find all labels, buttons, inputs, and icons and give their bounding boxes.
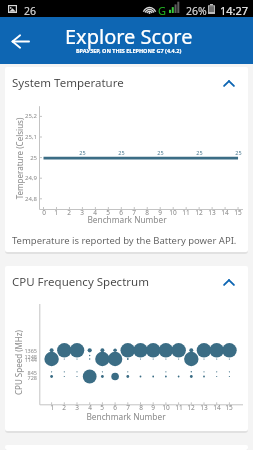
staticText: 26%	[186, 4, 207, 18]
staticText: 1	[54, 208, 58, 217]
staticText: Benchmark Number	[86, 411, 166, 422]
staticText: 12	[187, 403, 195, 412]
staticText: 24,9	[25, 174, 37, 182]
staticText: 13	[200, 403, 208, 412]
staticText: 15	[225, 403, 233, 412]
staticText: 1248	[24, 353, 37, 360]
button[interactable]: Back	[2, 23, 38, 59]
other: Collapse	[217, 270, 241, 294]
staticText: 11	[175, 403, 183, 412]
staticText: 4	[88, 403, 92, 412]
staticText: 25	[118, 149, 125, 156]
staticText: 24,8	[25, 195, 37, 203]
staticText: 845	[27, 369, 37, 376]
staticText: Temperature (Celsius)	[13, 117, 24, 199]
staticText: 10	[169, 208, 177, 217]
staticText: 11	[182, 208, 190, 217]
staticText: 2	[62, 403, 66, 412]
staticText: Explore Score	[65, 23, 193, 50]
button[interactable]: CPU Frequency Spectrum	[5, 266, 248, 298]
staticText: 10	[162, 403, 170, 412]
staticText: G	[158, 3, 167, 18]
staticText: 1365	[24, 347, 37, 354]
staticText: 2	[67, 208, 71, 217]
button[interactable]: System Temperature	[5, 67, 248, 99]
staticText: 8	[139, 403, 143, 412]
staticText: 26	[24, 4, 37, 18]
staticText: CPU Frequency Spectrum	[12, 274, 149, 290]
staticText: 7	[126, 403, 130, 412]
staticText: 6	[113, 403, 117, 412]
staticText: 15	[234, 208, 242, 217]
staticText: 5	[106, 208, 110, 217]
staticText: 1144	[24, 356, 37, 363]
staticText: 3	[80, 208, 84, 217]
staticText: 14:27	[220, 3, 249, 18]
staticText: System Temperature	[12, 75, 124, 91]
staticText: 25	[30, 154, 37, 162]
staticText: CPU Speed (MHz)	[13, 330, 24, 395]
other: Collapse	[217, 71, 241, 95]
staticText: 14	[213, 403, 221, 412]
staticText: 7	[132, 208, 136, 217]
staticText: Benchmark Number	[87, 214, 167, 225]
staticText: 0	[42, 208, 46, 217]
staticText: 13	[208, 208, 216, 217]
staticText: 1	[50, 403, 54, 412]
staticText: 25	[157, 149, 164, 156]
staticText: 728	[27, 374, 37, 381]
staticText: 12	[195, 208, 203, 217]
staticText: 25	[196, 149, 203, 156]
staticText: 4	[93, 208, 97, 217]
staticText: 6	[119, 208, 123, 217]
staticText: 9	[158, 208, 162, 217]
staticText: 25,2	[25, 112, 37, 120]
staticText: 5	[100, 403, 104, 412]
staticText: 25	[235, 149, 242, 156]
staticText: 14	[221, 208, 229, 217]
staticText: 25,1	[25, 133, 37, 141]
staticText: 8	[145, 208, 149, 217]
staticText: Temperature is reported by the Battery p…	[12, 234, 237, 247]
staticText: 9	[151, 403, 155, 412]
staticText: 25	[79, 149, 86, 156]
staticText: БРАУЗЕР, ON THIS ELEPHONE G7 (4.4.2)	[76, 47, 182, 54]
staticText: 3	[75, 403, 79, 412]
